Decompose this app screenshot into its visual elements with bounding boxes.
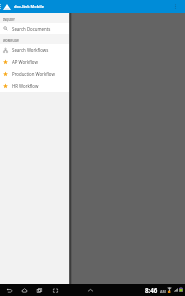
staticText: INQUIRY: [3, 18, 15, 22]
staticText: WORKFLOW: [3, 39, 19, 43]
staticText: AP Workflow: [12, 59, 38, 65]
button[interactable]: INQUIRY: [0, 13, 69, 23]
staticText: HR Workflow: [12, 83, 39, 89]
button[interactable]: Recent apps: [35, 286, 44, 295]
staticText: Search Documents: [12, 26, 51, 32]
staticText: doc-link Mobile: [14, 4, 44, 9]
button[interactable]: Search Workflows: [0, 44, 69, 56]
button[interactable]: WORKFLOW: [0, 34, 69, 44]
button[interactable]: Screenshot: [51, 286, 60, 295]
button[interactable]: Open navigation drawer: [0, 2, 3, 11]
staticText: Production Workflow: [12, 71, 55, 77]
staticText: 8:46: [145, 286, 158, 294]
button[interactable]: AP Workflow: [0, 56, 69, 68]
button[interactable]: More options: [170, 1, 181, 12]
button[interactable]: Production Workflow: [0, 68, 69, 80]
button[interactable]: Search Documents: [0, 23, 69, 34]
staticText: AM: [160, 289, 166, 294]
button[interactable]: Home: [20, 286, 29, 295]
button[interactable]: HR Workflow: [0, 80, 69, 92]
staticText: Search Workflows: [12, 47, 49, 53]
button[interactable]: Expand: [86, 286, 95, 295]
button[interactable]: Back: [5, 286, 14, 295]
